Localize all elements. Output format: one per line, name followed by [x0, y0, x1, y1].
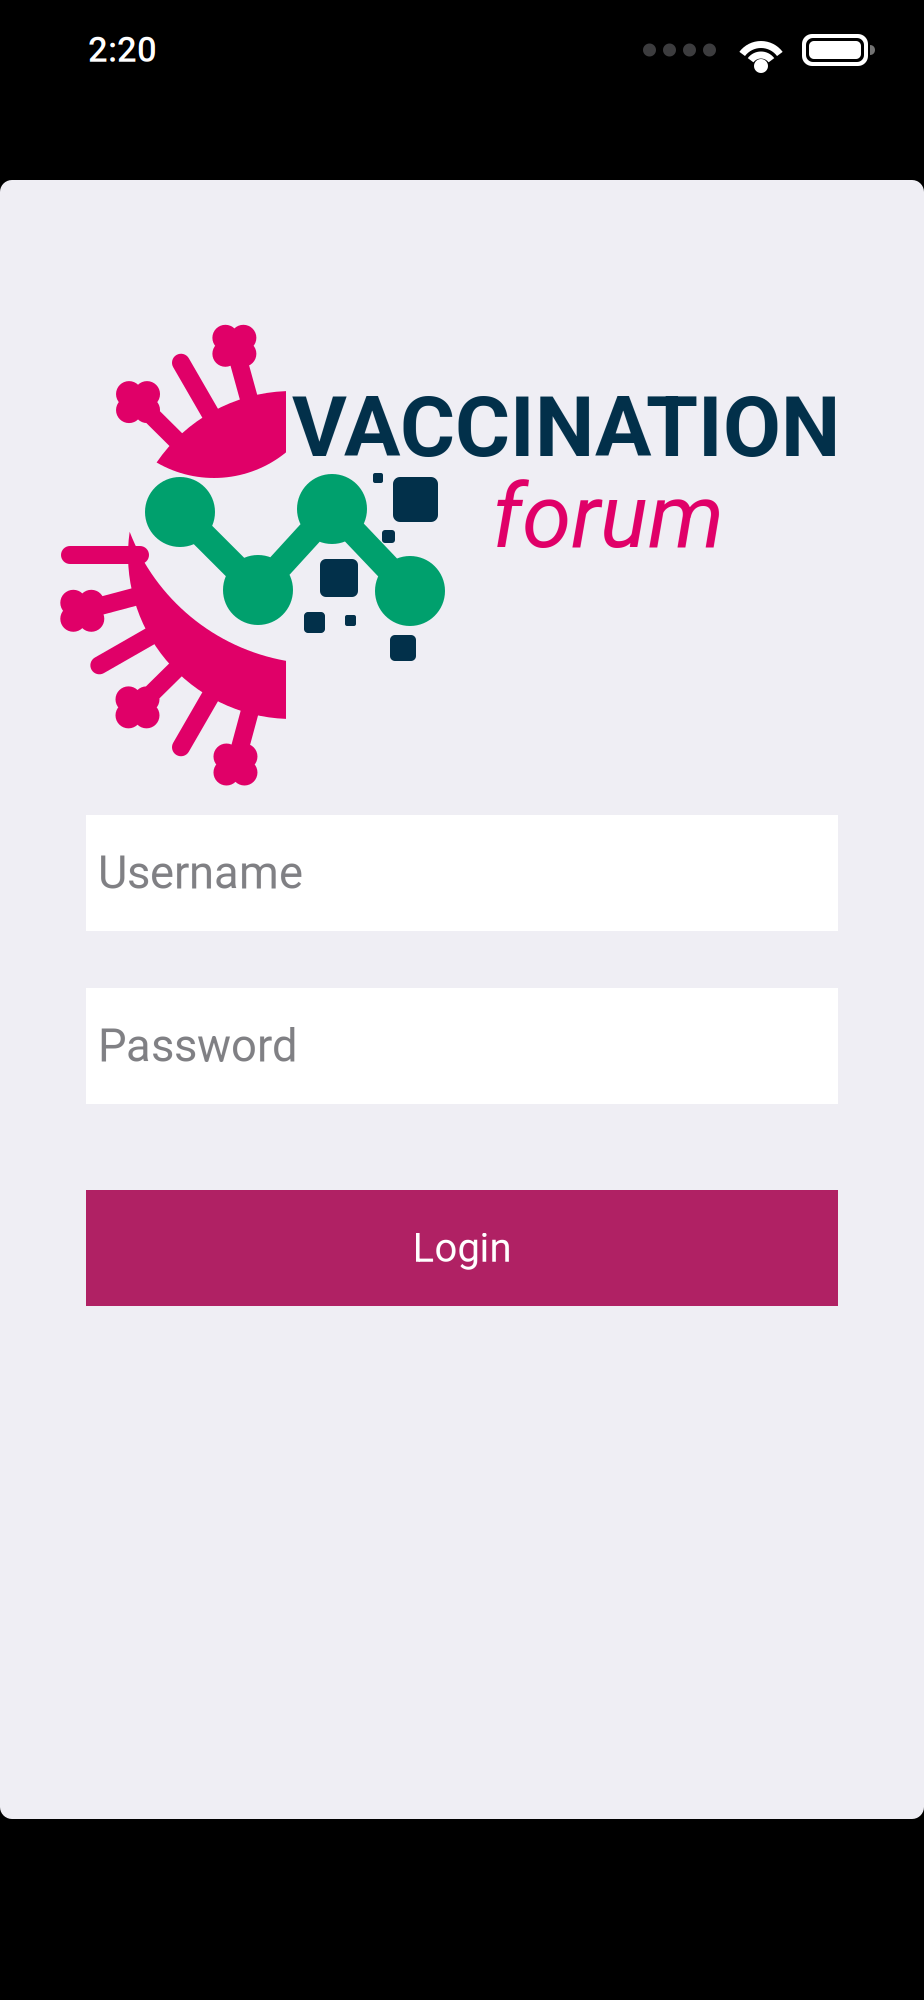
- staticText: 2:20: [88, 30, 157, 70]
- staticText: Password: [98, 1019, 298, 1072]
- staticText: Username: [98, 846, 303, 899]
- staticText: VACCINATION: [292, 378, 840, 476]
- button[interactable]: Login: [86, 1190, 838, 1306]
- staticText: forum: [492, 464, 724, 569]
- staticText: Login: [412, 1225, 511, 1271]
